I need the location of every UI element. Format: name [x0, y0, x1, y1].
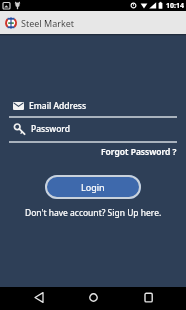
staticText: Don't have account? Sign Up here.: [25, 207, 162, 219]
staticText: Forgot Password ?: [101, 146, 177, 158]
button[interactable]: Login: [45, 175, 141, 199]
button[interactable]: [28, 287, 50, 310]
button[interactable]: Email Address: [13, 100, 186, 112]
staticText: 10:14: [166, 1, 184, 11]
button[interactable]: [82, 287, 104, 310]
staticText: Email Address: [29, 100, 87, 112]
button[interactable]: Password: [13, 123, 186, 135]
staticText: Password: [31, 123, 71, 135]
button[interactable]: Forgot Password ?: [101, 146, 177, 158]
staticText: Steel Market: [21, 17, 75, 29]
staticText: Login: [81, 181, 105, 193]
button[interactable]: Don't have account? Sign Up here.: [25, 207, 162, 219]
button[interactable]: [137, 287, 159, 310]
